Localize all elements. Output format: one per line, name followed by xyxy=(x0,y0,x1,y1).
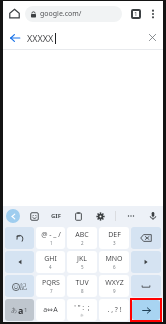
staticText: GIF xyxy=(51,212,61,220)
button[interactable]: MNO xyxy=(99,251,129,273)
staticText: XXXXX xyxy=(27,32,54,44)
button[interactable]: ' " : ; xyxy=(67,299,97,321)
button[interactable]: Cursor left xyxy=(5,251,34,273)
button[interactable]: Cursor right xyxy=(131,251,161,273)
button[interactable]: JKL xyxy=(67,251,97,273)
staticText: ABC xyxy=(75,230,89,240)
staticText: 6 xyxy=(113,264,116,270)
button[interactable]: google.com/#sbfbu=1& xyxy=(25,6,122,22)
button[interactable]: PQRS xyxy=(36,275,65,297)
button[interactable]: Home xyxy=(3,1,25,26)
button[interactable]: GIF xyxy=(49,209,63,223)
button[interactable]: undo xyxy=(5,227,34,249)
button[interactable]: DEF xyxy=(99,227,129,249)
staticText: a xyxy=(18,304,24,316)
button[interactable]: Enter xyxy=(132,300,160,320)
button[interactable]: Switch input mode xyxy=(5,299,34,321)
staticText: 5 xyxy=(81,264,84,270)
staticText: ☼ xyxy=(80,313,85,318)
button[interactable]: Settings xyxy=(93,209,107,223)
button[interactable]: Emoji and symbols xyxy=(5,275,34,297)
staticText: TUV xyxy=(75,278,89,288)
button[interactable]: Stickers xyxy=(27,209,41,223)
staticText: @ - _ / xyxy=(41,230,61,240)
staticText: WXYZ xyxy=(105,278,124,288)
button[interactable]: a⇔A xyxy=(36,299,65,321)
staticText: PQRS xyxy=(42,278,60,288)
button[interactable]: Back xyxy=(3,26,27,49)
staticText: 1 xyxy=(24,306,28,314)
staticText: GHI xyxy=(44,254,57,264)
staticText: 2 xyxy=(81,240,84,246)
staticText: あ xyxy=(11,306,18,314)
staticText: google.com/#sbfbu=1& xyxy=(40,9,117,19)
staticText: ' " : ; xyxy=(74,303,90,313)
staticText: 記 xyxy=(20,282,27,291)
staticText: 1 xyxy=(50,240,53,246)
staticText: 9 xyxy=(113,288,116,294)
staticText: 8 xyxy=(81,288,84,294)
staticText: . , ? ! xyxy=(107,305,122,315)
staticText: 7 xyxy=(50,288,53,294)
button[interactable]: ABC xyxy=(67,227,97,249)
button[interactable]: Space xyxy=(131,275,161,297)
staticText: a⇔A xyxy=(43,305,58,315)
button[interactable]: GHI xyxy=(36,251,65,273)
button[interactable]: More options xyxy=(145,1,161,26)
button[interactable]: Voice input xyxy=(146,209,160,223)
staticText: JKL xyxy=(77,254,87,264)
button[interactable]: Backspace xyxy=(131,227,161,249)
staticText: 4 xyxy=(49,264,52,270)
staticText: DEF xyxy=(108,230,121,240)
button[interactable]: More xyxy=(124,209,138,223)
button[interactable]: TUV xyxy=(67,275,97,297)
button[interactable]: WXYZ xyxy=(99,275,129,297)
button[interactable]: . , ? ! xyxy=(99,299,129,321)
button[interactable]: @ - _ / xyxy=(36,227,65,249)
staticText: 1 xyxy=(134,10,138,18)
button[interactable]: Collapse toolbar xyxy=(6,209,20,223)
button[interactable]: Clear xyxy=(141,26,163,49)
staticText: 3 xyxy=(113,240,116,246)
button[interactable]: Tabs, 1 open xyxy=(127,5,145,23)
button[interactable]: Clipboard xyxy=(71,209,85,223)
staticText: MNO xyxy=(105,254,123,264)
